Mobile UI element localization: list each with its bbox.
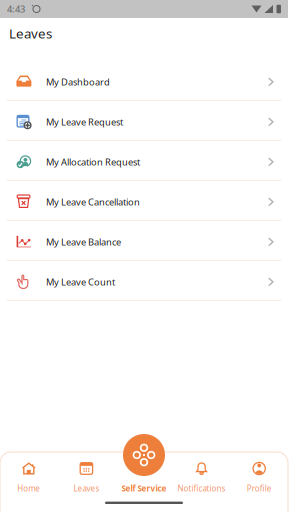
button[interactable]: My Dashboard: [0, 61, 288, 101]
button[interactable]: My Allocation Request: [0, 141, 288, 181]
button[interactable]: My Leave Request: [0, 101, 288, 141]
button[interactable]: My Leave Count: [0, 261, 288, 301]
button[interactable]: My Leave Cancellation: [0, 181, 288, 221]
button[interactable]: Self Service: [123, 434, 165, 476]
button[interactable]: Profile: [230, 452, 288, 511]
staticText: Leaves: [9, 24, 52, 42]
staticText: Self Service: [121, 483, 166, 494]
button[interactable]: My Leave Balance: [0, 221, 288, 261]
staticText: My Dashboard: [46, 76, 110, 88]
staticText: My Leave Request: [46, 116, 123, 128]
button[interactable]: Leaves: [58, 452, 115, 511]
staticText: My Leave Count: [46, 276, 115, 288]
staticText: Leaves: [73, 483, 99, 494]
button[interactable]: Home: [0, 452, 58, 511]
staticText: 4:43: [7, 3, 25, 15]
staticText: Home: [17, 483, 40, 494]
staticText: My Leave Cancellation: [46, 196, 140, 208]
button[interactable]: Notifications: [173, 452, 230, 511]
staticText: My Leave Balance: [46, 236, 121, 248]
staticText: My Allocation Request: [46, 156, 140, 168]
staticText: Notifications: [178, 483, 226, 494]
staticText: Profile: [247, 483, 272, 494]
